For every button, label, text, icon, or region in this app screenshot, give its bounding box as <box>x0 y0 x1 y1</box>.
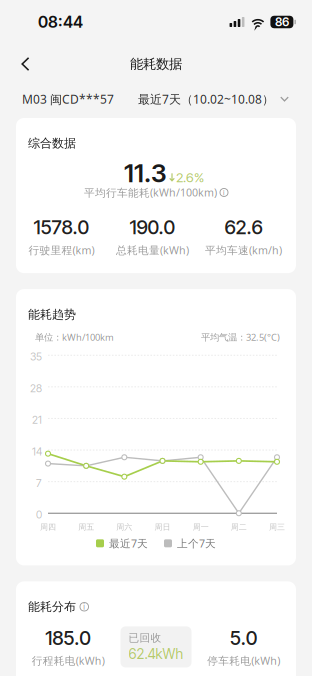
staticText: 最近7天（10.02~10.08） <box>138 91 274 107</box>
staticText: 停车耗电(kWh) <box>207 653 280 668</box>
staticText: 平均车速(km/h) <box>205 243 282 257</box>
staticText: 最近7天 <box>109 536 148 550</box>
staticText: M03 闽CD***57 <box>22 91 114 107</box>
button[interactable]: 最近7天（10.02~10.08） <box>138 91 289 107</box>
staticText: 0 <box>36 508 42 521</box>
staticText: 周四 <box>40 522 56 532</box>
staticText: 能耗数据 <box>130 56 182 72</box>
staticText: 11.3 <box>124 158 167 188</box>
staticText: 1578.0 <box>33 216 89 239</box>
staticText: 综合数据 <box>28 136 76 151</box>
staticText: 平均行车能耗(kWh/100km) <box>84 185 217 200</box>
staticText: 行驶里程(km) <box>28 243 94 257</box>
staticText: 单位：kWh/100km <box>35 331 114 343</box>
staticText: 周日 <box>154 522 170 532</box>
staticText: 上个7天 <box>177 536 216 550</box>
staticText: 周三 <box>269 522 285 532</box>
staticText: 62.6 <box>224 216 262 239</box>
staticText: 08:44 <box>38 12 83 32</box>
staticText: 能耗趋势 <box>28 307 76 322</box>
staticText: 行程耗电(kWh) <box>32 653 105 668</box>
staticText: 总耗电量(kWh) <box>116 243 189 257</box>
staticText: 2.6% <box>176 169 204 185</box>
staticText: 7 <box>36 477 42 489</box>
staticText: i <box>83 602 85 612</box>
staticText: 35 <box>30 350 42 363</box>
staticText: 185.0 <box>45 626 91 650</box>
staticText: 14 <box>32 445 42 458</box>
staticText: 能耗分布 <box>28 599 76 614</box>
staticText: 5.0 <box>230 626 258 650</box>
staticText: 平均气温：32.5(°C) <box>201 331 280 343</box>
staticText: 周五 <box>78 522 94 532</box>
staticText: 周一 <box>193 522 209 532</box>
button[interactable]: Back <box>0 46 44 82</box>
staticText: 周六 <box>116 522 132 532</box>
staticText: 周二 <box>231 522 247 532</box>
staticText: 已回收 <box>128 631 161 644</box>
staticText: 190.0 <box>129 216 175 239</box>
staticText: 62.4kWh <box>128 645 183 662</box>
staticText: 21 <box>32 413 42 426</box>
staticText: i <box>223 188 225 197</box>
staticText: 86 <box>275 15 289 29</box>
staticText: 28 <box>30 382 42 395</box>
